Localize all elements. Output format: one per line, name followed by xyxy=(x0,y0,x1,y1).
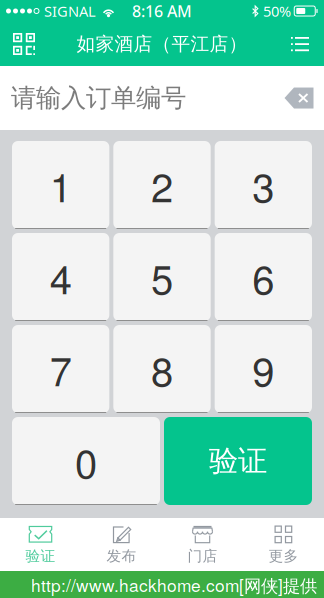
staticText: 1 xyxy=(50,156,72,214)
button[interactable]: 门店 xyxy=(162,518,243,571)
button[interactable]: 发布 xyxy=(81,518,162,571)
button[interactable]: 6 xyxy=(215,233,312,321)
button[interactable]: 4 xyxy=(12,233,109,321)
staticText: 3 xyxy=(252,156,274,214)
staticText: http://www.hackhome.com[网侠]提供 xyxy=(31,572,317,597)
staticText: 8 xyxy=(151,340,173,398)
button[interactable]: 5 xyxy=(113,233,211,321)
staticText: 6 xyxy=(252,248,274,306)
staticText: 5 xyxy=(151,248,173,306)
staticText: 更多 xyxy=(268,547,298,565)
button[interactable]: 菜单 xyxy=(276,22,324,66)
staticText: 请输入订单编号 xyxy=(11,82,186,113)
staticText: 如家酒店（平江店） xyxy=(76,32,247,55)
button[interactable]: 9 xyxy=(215,325,312,413)
button[interactable]: 扫一扫 xyxy=(0,22,48,66)
staticText: 门店 xyxy=(187,547,217,565)
button[interactable]: 3 xyxy=(215,141,312,229)
button[interactable]: 更多 xyxy=(243,518,324,571)
staticText: 2 xyxy=(151,156,173,214)
button[interactable]: 0 xyxy=(12,417,160,505)
staticText: SIGNAL xyxy=(44,1,96,21)
button[interactable]: 7 xyxy=(12,325,109,413)
button[interactable]: 验证 xyxy=(0,518,81,571)
staticText: 8:16 AM xyxy=(132,0,192,22)
staticText: 50% xyxy=(263,1,291,21)
button[interactable]: 1 xyxy=(12,141,109,229)
button[interactable]: 8 xyxy=(113,325,211,413)
staticText: 7 xyxy=(50,340,72,398)
staticText: 9 xyxy=(252,340,274,398)
button[interactable]: 删除 xyxy=(276,72,322,124)
staticText: 4 xyxy=(50,248,72,306)
staticText: 发布 xyxy=(106,547,136,565)
button[interactable]: 验证 xyxy=(164,417,312,505)
staticText: 验证 xyxy=(25,547,55,565)
button[interactable]: 2 xyxy=(113,141,211,229)
staticText: 验证 xyxy=(209,443,267,479)
staticText: 0 xyxy=(75,432,97,490)
